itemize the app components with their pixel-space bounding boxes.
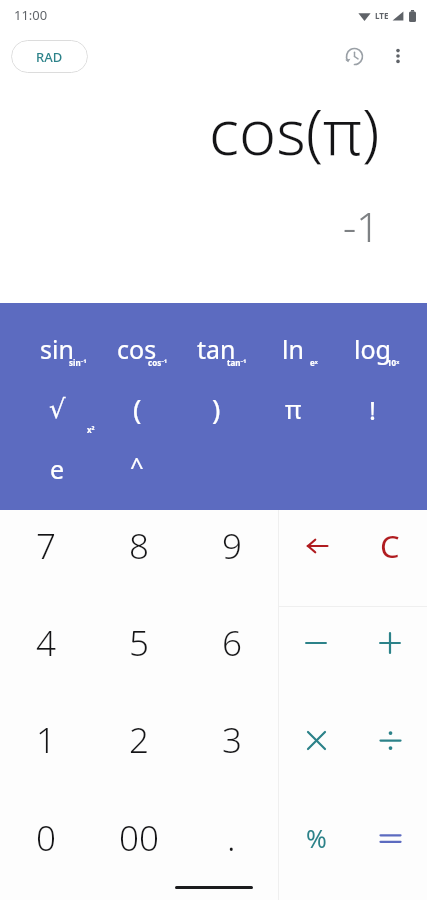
staticText: tan <box>197 332 236 366</box>
staticText: ) <box>212 390 221 428</box>
staticText: e <box>50 452 65 486</box>
button[interactable]: e <box>17 445 97 493</box>
staticText: π <box>285 392 302 426</box>
button[interactable]: tan <box>176 325 256 373</box>
staticText: 7 <box>36 522 56 570</box>
button[interactable]: More options <box>376 34 420 78</box>
button[interactable]: % <box>279 802 353 900</box>
other: Backspace <box>303 533 329 559</box>
staticText: x² <box>87 424 95 435</box>
button[interactable]: 1 <box>0 704 92 802</box>
staticText: cos(π) <box>209 88 380 174</box>
staticText: 10ˣ <box>387 357 400 368</box>
staticText: 8 <box>129 522 149 570</box>
button[interactable]: ! <box>332 385 412 433</box>
staticText: tan⁻¹ <box>227 357 247 368</box>
button[interactable]: RAD <box>11 40 88 73</box>
button[interactable]: 4 <box>0 607 92 704</box>
button[interactable]: Minus <box>279 607 353 704</box>
button[interactable]: Multiply <box>279 704 353 802</box>
staticText: sin <box>40 332 74 366</box>
other: Minus <box>303 630 329 656</box>
button[interactable]: Plus <box>353 607 427 704</box>
staticText: RAD <box>36 48 63 66</box>
button[interactable]: ^ <box>97 441 177 489</box>
staticText: LTE <box>375 10 389 21</box>
staticText: C <box>380 525 400 567</box>
button[interactable]: cos <box>97 325 177 373</box>
button[interactable]: Backspace <box>279 510 353 607</box>
staticText: ( <box>133 390 142 428</box>
button[interactable]: ) <box>176 385 256 433</box>
button[interactable]: 3 <box>185 704 278 802</box>
other: Plus <box>377 630 403 656</box>
staticText: 3 <box>222 716 242 764</box>
other: Divide <box>378 728 403 753</box>
staticText: cos <box>117 332 157 366</box>
staticText: 9 <box>222 522 242 570</box>
staticText: 11:00 <box>14 6 48 24</box>
staticText: 0 <box>36 814 56 862</box>
staticText: . <box>227 814 236 862</box>
button[interactable]: 5 <box>92 607 185 704</box>
button[interactable]: 8 <box>92 510 185 607</box>
staticText: log <box>354 332 391 366</box>
button[interactable]: sin <box>17 325 97 373</box>
button[interactable]: ( <box>97 385 177 433</box>
button[interactable]: History <box>332 34 376 78</box>
button[interactable]: ln <box>253 325 333 373</box>
button[interactable]: C <box>353 510 427 607</box>
staticText: 1 <box>36 716 56 764</box>
button[interactable]: 0 <box>0 802 92 900</box>
staticText: ^ <box>130 449 144 482</box>
button[interactable]: 6 <box>185 607 278 704</box>
staticText: sin⁻¹ <box>69 357 87 368</box>
button[interactable]: 7 <box>0 510 92 607</box>
staticText: % <box>306 821 327 855</box>
button[interactable]: 9 <box>185 510 278 607</box>
staticText: 5 <box>129 619 149 667</box>
button[interactable]: log <box>332 325 412 373</box>
staticText: cos⁻¹ <box>148 357 168 368</box>
staticText: ! <box>369 392 376 427</box>
button[interactable]: Equals <box>353 802 427 900</box>
staticText: 6 <box>222 619 242 667</box>
staticText: -1 <box>343 198 380 254</box>
staticText: 00 <box>119 814 159 862</box>
button[interactable]: √ <box>17 385 97 433</box>
staticText: 2 <box>129 716 149 764</box>
staticText: eˣ <box>310 357 318 368</box>
button[interactable]: π <box>253 385 333 433</box>
staticText: √ <box>49 394 66 424</box>
staticText: 4 <box>36 619 56 667</box>
button[interactable]: 00 <box>92 802 185 900</box>
button[interactable]: 2 <box>92 704 185 802</box>
other: Multiply <box>305 729 328 752</box>
other: Equals <box>378 826 403 851</box>
staticText: ln <box>282 332 304 366</box>
button[interactable]: Divide <box>353 704 427 802</box>
button[interactable]: . <box>185 802 278 900</box>
